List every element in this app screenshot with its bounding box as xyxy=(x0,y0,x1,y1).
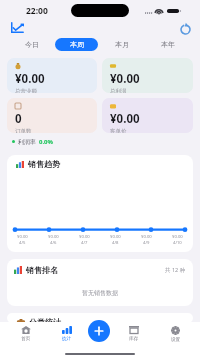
staticText: 4/5 xyxy=(19,240,26,246)
staticText: 0.0% xyxy=(39,138,53,146)
staticText: ¥0.00 xyxy=(110,111,140,127)
staticText: 库存 xyxy=(129,336,139,342)
staticText: 分类统计 xyxy=(29,317,61,323)
button[interactable]: 本周 xyxy=(55,38,98,51)
staticText: 本周 xyxy=(70,40,84,49)
button[interactable]: 本月 xyxy=(100,38,144,51)
staticText: 订单数 xyxy=(15,128,32,133)
staticText: ¥0.00 xyxy=(110,71,140,87)
staticText: 共 12 种 xyxy=(165,266,186,274)
staticText: ¥0.00 xyxy=(172,234,183,240)
staticText: 本月 xyxy=(115,40,129,49)
staticText: 4/6 xyxy=(50,240,57,246)
button[interactable]: 库存 xyxy=(119,326,148,343)
staticText: 销售趋势 xyxy=(28,159,60,169)
staticText: ¥0.00 xyxy=(141,234,152,240)
button[interactable]: 统计 xyxy=(52,326,81,343)
staticText: ¥0.00 xyxy=(110,234,121,240)
staticText: 22:00 xyxy=(26,5,48,17)
button[interactable]: 今日 xyxy=(10,38,53,51)
staticText: 总营业额 xyxy=(15,88,37,93)
staticText: 今日 xyxy=(25,40,39,49)
staticText: 设置 xyxy=(171,337,181,343)
button[interactable]: ¥0.00 xyxy=(102,58,193,93)
staticText: 销售排名 xyxy=(26,265,58,275)
staticText: 4/8 xyxy=(112,240,119,246)
staticText: 0 xyxy=(15,111,22,127)
staticText: 本年 xyxy=(161,40,175,49)
button[interactable]: Refresh xyxy=(179,23,192,36)
button[interactable]: Sales analytics xyxy=(11,22,24,33)
staticText: 首页 xyxy=(21,336,31,342)
staticText: ¥0.00 xyxy=(79,234,90,240)
button[interactable]: 首页 xyxy=(11,326,40,343)
button[interactable]: 本年 xyxy=(146,38,190,51)
button[interactable]: 0 xyxy=(7,98,97,133)
staticText: 4/9 xyxy=(143,240,150,246)
staticText: ¥0.00 xyxy=(48,234,59,240)
staticText: 利润率 xyxy=(18,138,36,146)
staticText: ¥0.00 xyxy=(17,234,28,240)
button[interactable]: 设置 xyxy=(161,326,190,343)
staticText: ¥0.00 xyxy=(15,71,45,87)
button[interactable]: ¥0.00 xyxy=(7,58,97,93)
button[interactable]: ¥0.00 xyxy=(102,98,193,133)
staticText: 4/10 xyxy=(173,240,182,246)
staticText: 暂无销售数据 xyxy=(82,289,118,297)
staticText: 统计 xyxy=(62,336,72,342)
staticText: 4/7 xyxy=(81,240,88,246)
button[interactable]: Add record xyxy=(88,320,110,342)
staticText: 总利润 xyxy=(110,88,127,93)
staticText: 客单价 xyxy=(110,128,127,133)
